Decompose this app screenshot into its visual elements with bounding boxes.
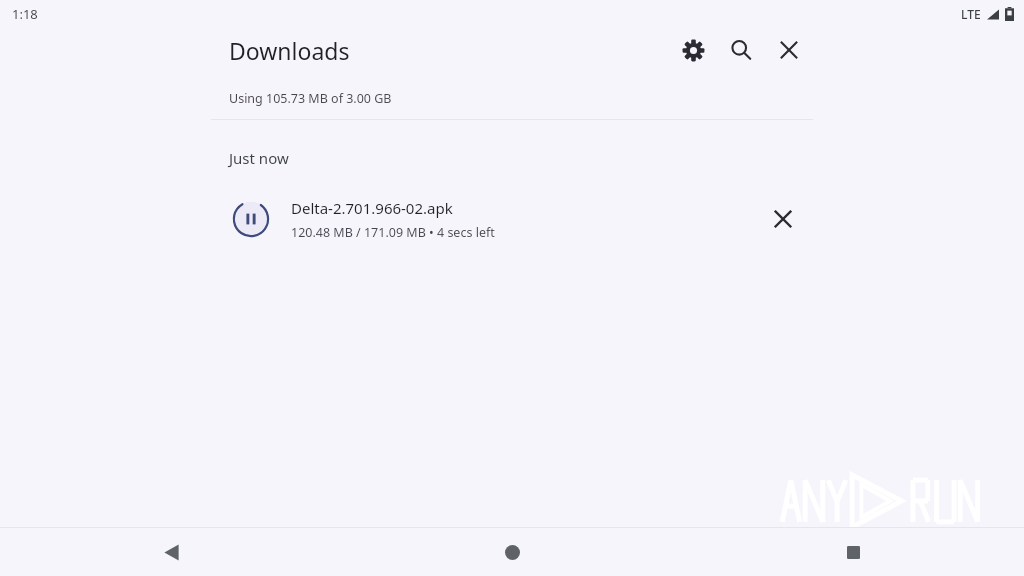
button[interactable]: Back bbox=[0, 528, 342, 576]
staticText: Using 105.73 MB of 3.00 GB bbox=[229, 90, 392, 107]
button[interactable]: Pause download bbox=[229, 197, 273, 241]
button[interactable]: Close bbox=[765, 28, 813, 72]
staticText: 120.48 MB / 171.09 MB • 4 secs left bbox=[291, 224, 495, 241]
staticText: Just now bbox=[229, 148, 289, 168]
staticText: Delta-2.701.966-02.apk bbox=[291, 198, 453, 218]
button[interactable]: Search bbox=[717, 28, 765, 72]
staticText: LTE bbox=[961, 6, 981, 22]
staticText: 1:18 bbox=[12, 5, 38, 23]
button[interactable]: Settings bbox=[669, 28, 717, 72]
button[interactable]: Recent apps bbox=[683, 528, 1024, 576]
button[interactable]: Cancel download bbox=[759, 195, 807, 243]
button[interactable]: Home bbox=[342, 528, 683, 576]
staticText: Downloads bbox=[229, 35, 350, 66]
button[interactable]: Pause download bbox=[211, 188, 813, 250]
